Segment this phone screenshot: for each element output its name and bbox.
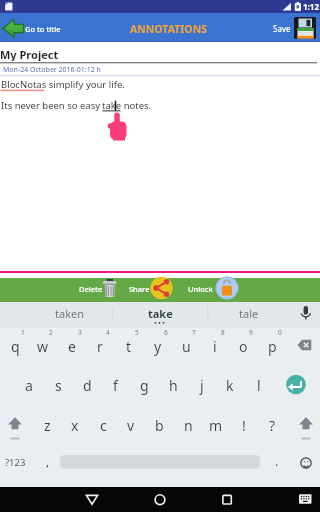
staticText: h bbox=[169, 376, 178, 395]
staticText: 8 bbox=[221, 328, 225, 337]
staticText: q bbox=[11, 337, 20, 356]
button[interactable] bbox=[292, 302, 320, 328]
staticText: p bbox=[268, 337, 277, 356]
staticText: y bbox=[154, 337, 162, 356]
button[interactable]: r bbox=[87, 331, 113, 361]
staticText: Unlock bbox=[188, 284, 213, 294]
button[interactable] bbox=[292, 332, 320, 360]
staticText: Delete bbox=[79, 284, 103, 294]
staticText: BlocNotas simplify your life. bbox=[1, 78, 125, 91]
button[interactable] bbox=[142, 487, 178, 512]
button[interactable]: x bbox=[62, 410, 88, 440]
button[interactable]: o bbox=[230, 331, 256, 361]
button[interactable]: k bbox=[217, 370, 243, 400]
button[interactable] bbox=[290, 487, 320, 512]
staticText: f bbox=[113, 376, 118, 395]
staticText: m bbox=[209, 416, 223, 435]
button[interactable]: y bbox=[145, 331, 171, 361]
staticText: 4 bbox=[106, 328, 110, 337]
button[interactable]: a bbox=[16, 370, 42, 400]
button[interactable]: j bbox=[189, 370, 215, 400]
staticText: t bbox=[126, 337, 132, 356]
staticText: ? bbox=[269, 416, 276, 435]
button[interactable]: e bbox=[59, 331, 85, 361]
staticText: Mon-24 October 2016-01:12 h bbox=[3, 65, 101, 75]
button[interactable] bbox=[76, 276, 121, 302]
button[interactable] bbox=[284, 372, 310, 398]
staticText: 0 bbox=[278, 328, 282, 337]
button[interactable]: . bbox=[267, 448, 287, 474]
button[interactable]: m bbox=[203, 410, 229, 440]
button[interactable] bbox=[74, 487, 110, 512]
staticText: Save bbox=[273, 23, 291, 34]
staticText: e bbox=[68, 337, 76, 356]
staticText: d bbox=[83, 376, 92, 395]
staticText: g bbox=[140, 376, 149, 395]
button[interactable] bbox=[207, 302, 292, 328]
button[interactable] bbox=[0, 13, 82, 42]
button[interactable]: p bbox=[259, 331, 285, 361]
staticText: w bbox=[37, 337, 49, 356]
button[interactable] bbox=[113, 302, 207, 328]
button[interactable]: q bbox=[2, 331, 28, 361]
staticText: c bbox=[100, 416, 107, 435]
button[interactable]: t bbox=[116, 331, 142, 361]
staticText: x bbox=[71, 416, 79, 435]
staticText: k bbox=[226, 376, 234, 395]
staticText: , bbox=[46, 453, 50, 469]
button[interactable]: ? bbox=[259, 410, 285, 440]
staticText: s bbox=[55, 376, 62, 395]
button[interactable]: h bbox=[160, 370, 186, 400]
staticText: 9 bbox=[249, 328, 253, 337]
button[interactable]: w bbox=[30, 331, 56, 361]
button[interactable]: v bbox=[118, 410, 144, 440]
staticText: 7 bbox=[192, 328, 196, 337]
button[interactable] bbox=[209, 487, 245, 512]
button[interactable]: ! bbox=[231, 410, 257, 440]
button[interactable] bbox=[183, 276, 241, 302]
staticText: v bbox=[127, 416, 135, 435]
staticText: My Project bbox=[0, 47, 59, 61]
staticText: Share bbox=[129, 284, 150, 294]
button[interactable] bbox=[20, 302, 113, 328]
staticText: ANNOTATIONS bbox=[130, 22, 207, 36]
button[interactable]: n bbox=[175, 410, 201, 440]
button[interactable] bbox=[293, 410, 319, 440]
button[interactable] bbox=[2, 410, 28, 440]
button[interactable] bbox=[60, 452, 260, 472]
button[interactable] bbox=[293, 450, 319, 476]
button[interactable]: s bbox=[45, 370, 71, 400]
button[interactable] bbox=[124, 276, 176, 302]
staticText: taken bbox=[55, 306, 85, 321]
button[interactable]: b bbox=[146, 410, 172, 440]
button[interactable]: g bbox=[131, 370, 157, 400]
button[interactable]: ?123 bbox=[2, 449, 29, 475]
staticText: ! bbox=[242, 416, 246, 435]
button[interactable]: z bbox=[34, 410, 60, 440]
staticText: 1 bbox=[21, 328, 25, 337]
staticText: . bbox=[275, 453, 279, 469]
button[interactable]: u bbox=[173, 331, 199, 361]
staticText: take notes. bbox=[102, 99, 152, 112]
staticText: j bbox=[200, 376, 204, 395]
staticText: l bbox=[257, 376, 261, 395]
button[interactable]: , bbox=[38, 448, 58, 474]
button[interactable]: f bbox=[102, 370, 128, 400]
button[interactable]: l bbox=[246, 370, 272, 400]
staticText: take bbox=[148, 306, 173, 321]
staticText: u bbox=[182, 337, 191, 356]
staticText: Its never been so easy to bbox=[1, 99, 101, 112]
button[interactable]: c bbox=[90, 410, 116, 440]
staticText: ?123 bbox=[5, 456, 26, 469]
button[interactable] bbox=[262, 13, 320, 42]
staticText: r bbox=[97, 337, 103, 356]
staticText: a bbox=[25, 376, 33, 395]
staticText: 5 bbox=[135, 328, 139, 337]
staticText: z bbox=[44, 416, 51, 435]
staticText: n bbox=[184, 416, 193, 435]
button[interactable]: i bbox=[202, 331, 228, 361]
staticText: 3 bbox=[78, 328, 82, 337]
staticText: b bbox=[155, 416, 164, 435]
button[interactable]: d bbox=[74, 370, 100, 400]
staticText: 6 bbox=[164, 328, 168, 337]
